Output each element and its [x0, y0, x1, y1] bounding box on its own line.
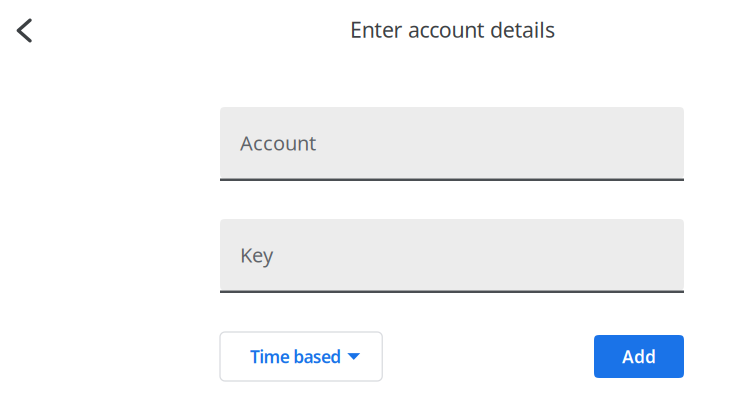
button[interactable]: Time based — [220, 332, 382, 381]
button[interactable]: Back — [1, 5, 47, 51]
staticText: Key — [240, 241, 273, 268]
staticText: Add — [622, 345, 656, 368]
button[interactable]: Key — [220, 219, 684, 293]
staticText: Time based — [250, 345, 341, 368]
staticText: Enter account details — [350, 15, 555, 44]
button[interactable]: Account — [220, 107, 684, 181]
button[interactable]: Add — [594, 335, 684, 378]
staticText: Account — [240, 129, 316, 156]
